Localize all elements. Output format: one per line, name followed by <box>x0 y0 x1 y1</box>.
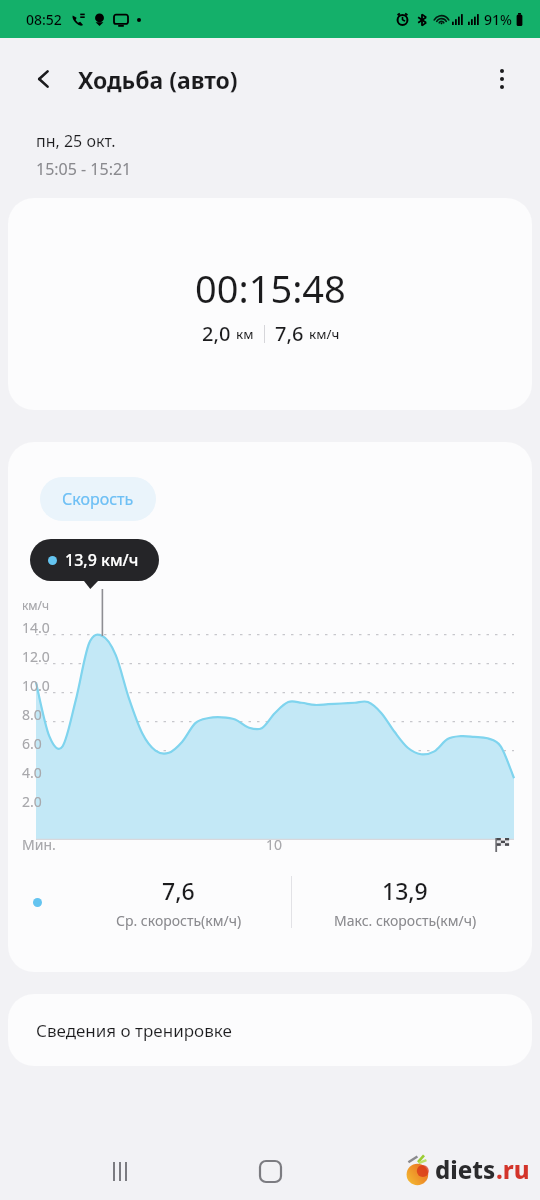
staticText: 7,6 <box>275 320 309 347</box>
staticText: км/ч <box>309 325 340 343</box>
staticText: км <box>236 325 254 343</box>
staticText: 12.0 <box>22 647 50 666</box>
staticText: 7,6 <box>162 875 195 906</box>
button[interactable]: More options <box>480 57 524 101</box>
staticText: 8.0 <box>22 705 42 724</box>
button[interactable]: Сведения о тренировке <box>8 994 532 1066</box>
staticText: Ср. скорость(км/ч) <box>116 911 242 930</box>
staticText: Макс. скорость(км/ч) <box>334 911 477 930</box>
staticText: 13,9 км/ч <box>65 549 139 571</box>
staticText: 08:52 <box>26 10 62 29</box>
staticText: diets <box>435 1153 496 1186</box>
button[interactable]: Скорость <box>40 477 156 521</box>
button[interactable]: 00:15:48 <box>8 198 532 410</box>
staticText: 6.0 <box>22 734 42 753</box>
staticText: 4.0 <box>22 763 42 782</box>
staticText: км/ч <box>22 597 50 613</box>
staticText: Скорость <box>62 488 134 510</box>
button[interactable]: 13,9 <box>292 875 518 930</box>
button[interactable]: Back <box>398 1149 442 1193</box>
staticText: Ходьба (авто) <box>78 64 238 95</box>
staticText: 10.0 <box>22 676 50 695</box>
staticText: 00:15:48 <box>195 262 346 314</box>
staticText: 2,0 <box>202 320 236 347</box>
staticText: 91% <box>484 10 512 29</box>
staticText: 10 <box>266 835 283 854</box>
button[interactable]: Back <box>22 57 66 101</box>
button[interactable]: 7,6 <box>66 875 291 930</box>
staticText: Сведения о тренировке <box>36 1019 232 1042</box>
staticText: пн, 25 окт. <box>36 130 116 152</box>
staticText: .ru <box>496 1153 530 1186</box>
button[interactable]: Recent apps <box>98 1149 142 1193</box>
staticText: 2.0 <box>22 792 42 811</box>
staticText: 13,9 <box>382 875 428 906</box>
button[interactable]: Home <box>248 1149 292 1193</box>
staticText: Мин. <box>22 835 56 854</box>
staticText: 15:05 - 15:21 <box>36 158 132 180</box>
staticText: 14.0 <box>22 618 50 637</box>
